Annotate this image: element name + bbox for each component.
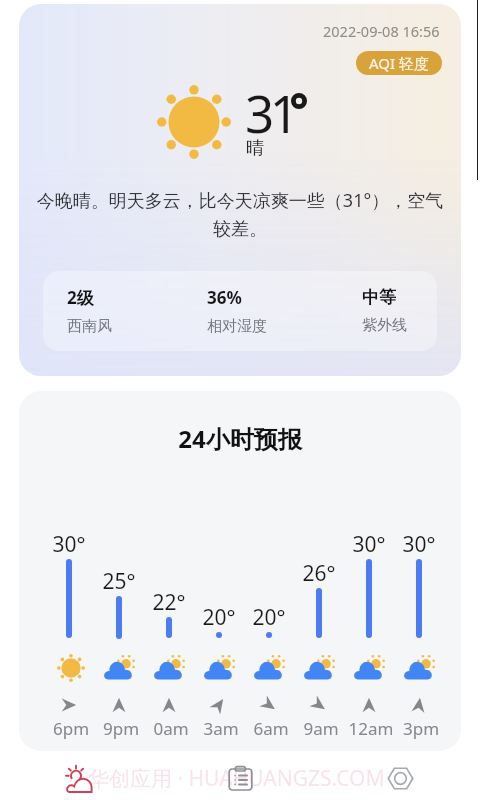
staticText: 25° <box>94 567 144 596</box>
staticText: 中等 <box>362 287 396 308</box>
staticText: 紫外线 <box>362 316 407 335</box>
staticText: 3pm <box>396 717 446 740</box>
staticText: 30° <box>344 530 394 559</box>
staticText: 9pm <box>96 717 146 740</box>
staticText: 西南风 <box>67 317 112 336</box>
staticText: 9am <box>296 717 346 740</box>
staticText: 2级 <box>67 286 94 309</box>
staticText: 30° <box>394 530 444 559</box>
staticText: 30° <box>44 530 94 559</box>
staticText: 36% <box>207 286 242 309</box>
staticText: 今晚晴。明天多云，比今天凉爽一些（31°），空气较差。 <box>33 188 447 240</box>
staticText: 0am <box>146 717 196 740</box>
staticText: 20° <box>194 603 244 632</box>
staticText: 晴 <box>246 137 264 160</box>
staticText: 6pm <box>46 717 96 740</box>
button[interactable]: AQI 轻度 <box>356 51 442 75</box>
staticText: 26° <box>294 559 344 588</box>
staticText: 22° <box>144 588 194 617</box>
staticText: 华创应用 · HUAHUANGZS.COM <box>88 764 385 793</box>
button[interactable]: List <box>160 751 320 800</box>
staticText: 12am <box>346 717 396 740</box>
staticText: AQI 轻度 <box>369 53 429 73</box>
staticText: 相对湿度 <box>207 317 267 336</box>
staticText: 31 <box>245 78 295 147</box>
staticText: 2022-09-08 16:56 <box>323 21 440 41</box>
staticText: 24小时预报 <box>19 422 461 455</box>
button[interactable]: Weather <box>0 751 160 800</box>
staticText: 6am <box>246 717 296 740</box>
button[interactable]: Settings <box>320 751 480 800</box>
staticText: 20° <box>244 603 294 632</box>
staticText: 3am <box>196 717 246 740</box>
